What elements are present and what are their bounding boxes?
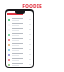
staticText: FOODIE — [22, 3, 42, 10]
button[interactable] — [6, 17, 33, 22]
button[interactable] — [6, 57, 33, 62]
button[interactable] — [6, 52, 33, 57]
button[interactable] — [6, 42, 33, 47]
button[interactable] — [6, 62, 33, 67]
button[interactable] — [6, 37, 33, 42]
button[interactable] — [6, 32, 33, 37]
button[interactable] — [6, 27, 33, 32]
button[interactable] — [6, 47, 33, 52]
button[interactable] — [6, 22, 33, 27]
